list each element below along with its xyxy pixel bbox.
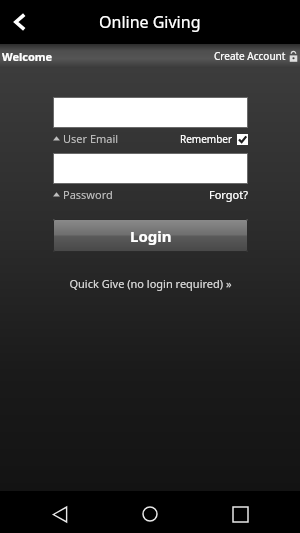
button[interactable]: Quick Give (no login required) » [53,276,248,291]
staticText: Create Account [214,49,286,63]
staticText: Login [130,226,172,246]
button[interactable]: Text input [53,97,248,128]
staticText: Remember [180,132,233,146]
staticText: User Email [63,131,119,146]
button[interactable]: Home [120,495,180,533]
button[interactable]: Back [30,495,90,533]
staticText: Quick Give (no login required) » [69,276,232,291]
staticText: Online Giving [99,11,201,33]
button[interactable]: Text input [53,153,248,184]
button[interactable]: Remember [180,132,248,146]
staticText: Welcome [2,49,53,64]
button[interactable]: Recent apps [210,495,270,533]
button[interactable]: Create Account [214,49,298,63]
button[interactable]: Back [0,0,40,44]
staticText: Password [63,187,113,202]
button[interactable]: Login [53,219,248,252]
button[interactable]: Forgot? [209,187,248,202]
